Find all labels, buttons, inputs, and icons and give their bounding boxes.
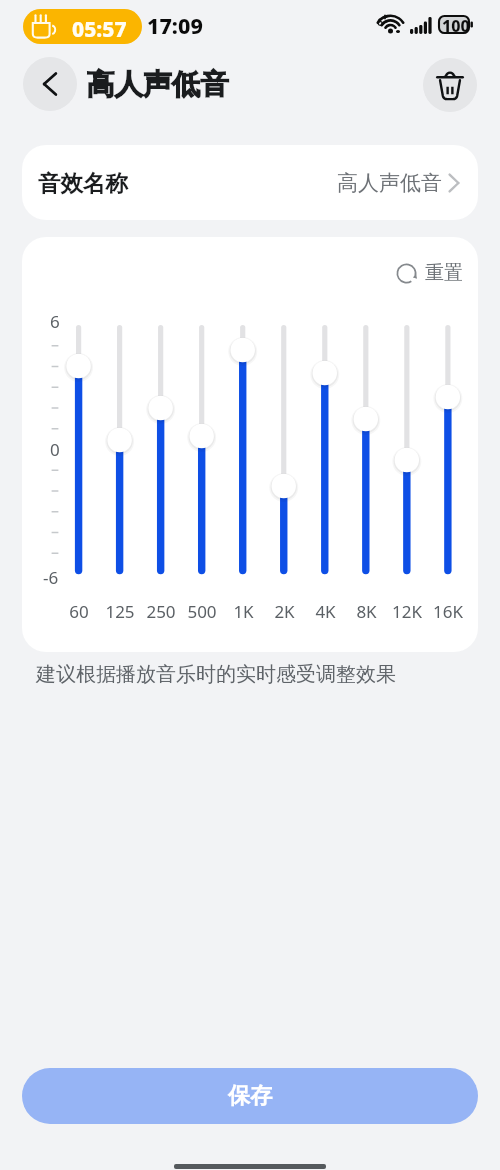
button[interactable]: 音效名称 — [22, 145, 478, 220]
staticText: 高人声低音 — [86, 67, 229, 103]
staticText: 8K — [356, 600, 377, 623]
staticText: 6 — [377, 14, 384, 29]
staticText: 12K — [392, 600, 422, 623]
button[interactable]: Back — [23, 57, 77, 111]
button[interactable]: 重置 — [393, 258, 466, 288]
staticText: 建议根据播放音乐时的实时感受调整效果 — [36, 662, 396, 687]
staticText: 6 — [50, 310, 60, 333]
staticText: 音效名称 — [38, 169, 128, 197]
button[interactable]: 保存 — [22, 1068, 478, 1124]
staticText: -6 — [43, 566, 59, 589]
staticText: 保存 — [228, 1082, 272, 1110]
staticText: 100 — [442, 15, 470, 34]
staticText: 1K — [233, 600, 254, 623]
staticText: 0 — [50, 438, 60, 461]
staticText: 高人声低音 — [337, 170, 442, 196]
staticText: 2K — [274, 600, 295, 623]
staticText: 125 — [105, 600, 135, 623]
staticText: 17:09 — [147, 11, 203, 40]
staticText: 250 — [146, 600, 176, 623]
staticText: 05:57 — [72, 15, 127, 44]
button[interactable]: Delete — [423, 58, 477, 112]
staticText: 60 — [69, 600, 89, 623]
staticText: 16K — [433, 600, 463, 623]
staticText: 500 — [187, 600, 217, 623]
staticText: 重置 — [425, 261, 463, 285]
staticText: 4K — [315, 600, 336, 623]
